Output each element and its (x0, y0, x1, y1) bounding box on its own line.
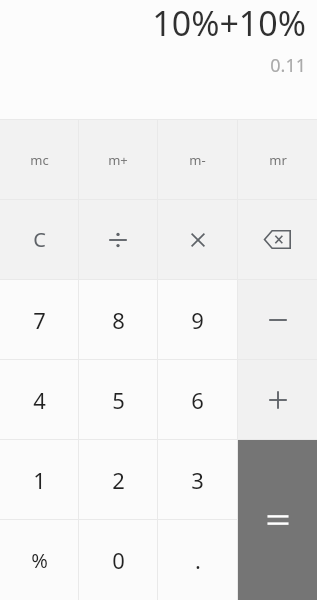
staticText: 10%+10% (152, 0, 306, 46)
staticText: C (33, 226, 46, 253)
staticText: 4 (33, 385, 46, 415)
staticText: mc (30, 151, 49, 169)
staticText: 6 (191, 385, 204, 415)
button[interactable]: Plus (238, 360, 317, 439)
button[interactable]: 4 (0, 360, 78, 439)
button[interactable]: Backspace (238, 200, 317, 279)
button[interactable]: 0 (79, 520, 157, 600)
button[interactable]: Minus (238, 280, 317, 359)
staticText: 0.11 (270, 53, 306, 78)
button[interactable]: Divide (79, 200, 157, 279)
button[interactable]: 9 (158, 280, 237, 359)
button[interactable]: mr (238, 120, 317, 199)
staticText: . (195, 545, 201, 575)
button[interactable]: 5 (79, 360, 157, 439)
staticText: 9 (191, 305, 204, 335)
button[interactable]: m- (158, 120, 237, 199)
staticText: % (31, 547, 48, 574)
button[interactable]: 6 (158, 360, 237, 439)
button[interactable]: % (0, 520, 78, 600)
button[interactable]: Equals (238, 440, 317, 600)
button[interactable]: m+ (79, 120, 157, 199)
staticText: m+ (108, 151, 128, 169)
staticText: 1 (33, 465, 46, 495)
staticText: 0 (112, 545, 125, 575)
staticText: mr (269, 151, 287, 169)
button[interactable]: 1 (0, 440, 78, 519)
button[interactable]: Multiply (158, 200, 237, 279)
staticText: 7 (33, 305, 46, 335)
staticText: 2 (112, 465, 125, 495)
staticText: 3 (191, 465, 204, 495)
button[interactable]: 3 (158, 440, 237, 519)
staticText: 5 (112, 385, 125, 415)
button[interactable]: C (0, 200, 78, 279)
button[interactable]: mc (0, 120, 78, 199)
button[interactable]: 2 (79, 440, 157, 519)
button[interactable]: 7 (0, 280, 78, 359)
button[interactable]: . (158, 520, 237, 600)
staticText: 8 (112, 305, 125, 335)
staticText: m- (189, 151, 206, 169)
button[interactable]: 8 (79, 280, 157, 359)
